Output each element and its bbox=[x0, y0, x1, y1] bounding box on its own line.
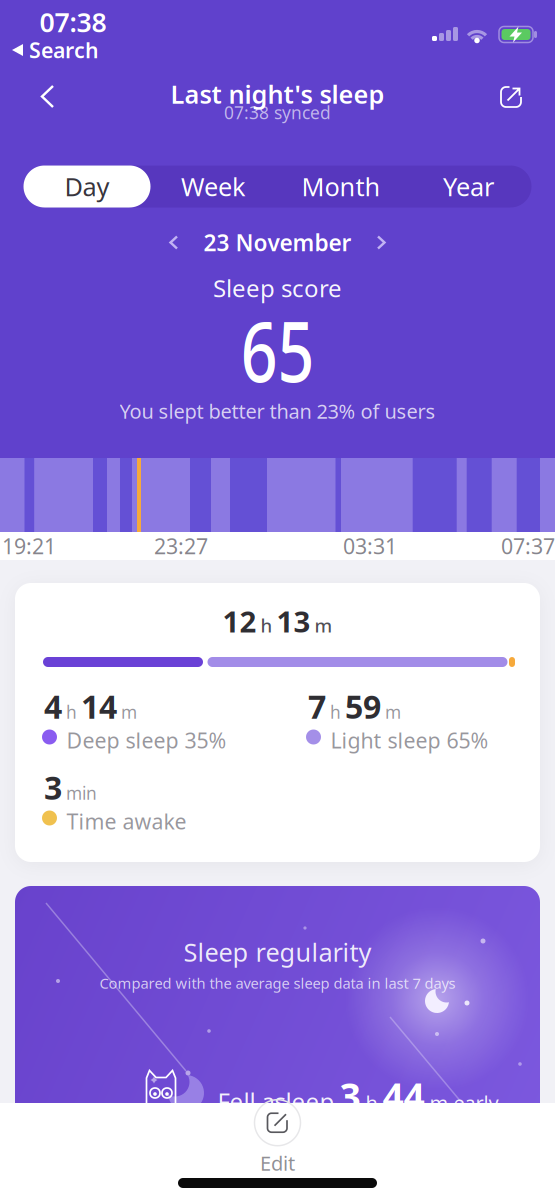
staticText: Fell asleep bbox=[217, 1085, 334, 1117]
button[interactable]: Year bbox=[413, 165, 523, 207]
staticText: Sleep score bbox=[213, 272, 342, 304]
staticText: h bbox=[330, 700, 341, 723]
button[interactable] bbox=[169, 235, 179, 249]
staticText: m bbox=[385, 700, 401, 723]
button[interactable]: Search bbox=[11, 36, 99, 64]
staticText: 19:21 bbox=[2, 532, 56, 560]
staticText: 3 bbox=[44, 766, 62, 808]
staticText: 07:38 synced bbox=[224, 101, 331, 124]
staticText: m bbox=[314, 613, 332, 637]
staticText: 13 bbox=[276, 601, 310, 640]
button[interactable] bbox=[498, 84, 524, 110]
staticText: 03:31 bbox=[343, 532, 397, 560]
staticText: 07:38 bbox=[39, 4, 106, 40]
button[interactable]: Day bbox=[23, 165, 150, 207]
button[interactable]: Week bbox=[158, 165, 268, 207]
staticText: Day bbox=[64, 170, 109, 203]
staticText: Time awake bbox=[66, 807, 186, 835]
staticText: Last night's sleep bbox=[170, 77, 384, 111]
staticText: Month bbox=[301, 170, 380, 203]
staticText: Sleep regularity bbox=[183, 935, 371, 969]
staticText: h bbox=[365, 1089, 377, 1116]
staticText: h bbox=[66, 700, 77, 723]
staticText: 23 November bbox=[203, 227, 351, 257]
staticText: 65 bbox=[230, 295, 324, 405]
button[interactable]: Month bbox=[286, 165, 396, 207]
button[interactable] bbox=[40, 85, 56, 109]
staticText: 3 bbox=[339, 1071, 360, 1121]
staticText: Deep sleep 35% bbox=[66, 726, 226, 754]
staticText: 4 bbox=[44, 685, 62, 727]
button[interactable]: Edit bbox=[254, 1100, 300, 1176]
staticText: 44 bbox=[382, 1071, 424, 1121]
button[interactable] bbox=[376, 235, 386, 249]
staticText: h bbox=[260, 613, 272, 637]
staticText: You slept better than 23% of users bbox=[119, 398, 435, 424]
staticText: 14 bbox=[81, 685, 117, 727]
staticText: m early bbox=[429, 1089, 498, 1116]
staticText: 07:37 bbox=[501, 532, 555, 560]
staticText: Week bbox=[181, 170, 246, 203]
staticText: Edit bbox=[260, 1150, 295, 1176]
staticText: Year bbox=[443, 170, 494, 203]
staticText: Compared with the average sleep data in … bbox=[99, 973, 455, 993]
staticText: m bbox=[121, 700, 137, 723]
staticText: 23:27 bbox=[154, 532, 208, 560]
staticText: min bbox=[66, 781, 97, 804]
staticText: 7 bbox=[308, 685, 326, 727]
staticText: 59 bbox=[345, 685, 381, 727]
staticText: 12 bbox=[222, 601, 256, 640]
staticText: Light sleep 65% bbox=[330, 726, 488, 754]
staticText: Search bbox=[29, 36, 99, 64]
